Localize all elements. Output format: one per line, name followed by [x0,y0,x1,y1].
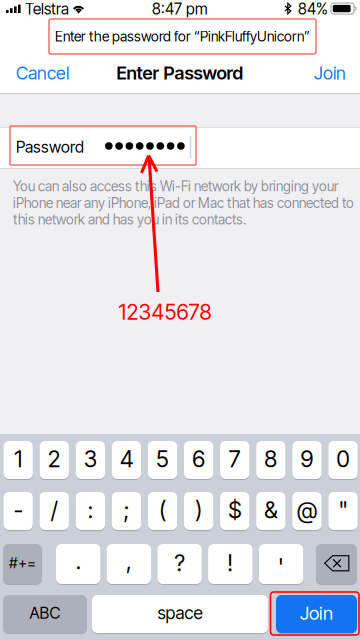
staticText: " [339,496,348,524]
staticText: ( [159,496,166,524]
staticText: 3 [84,445,97,473]
staticText: 8 [264,445,277,473]
button[interactable]: $ [220,491,249,531]
staticText: 5 [156,445,169,473]
staticText: $ [228,496,241,524]
button[interactable]: & [256,491,285,531]
staticText: Join [314,62,346,84]
staticText: 0 [337,445,350,473]
staticText: ' [278,553,284,581]
staticText: 2 [48,445,61,473]
button[interactable]: 6 [184,440,213,480]
staticText: 8:47 pm [152,0,208,18]
staticText: , [126,547,132,575]
button[interactable]: 7 [220,440,249,480]
button[interactable]: @ [292,491,322,531]
button[interactable]: space [92,594,268,634]
staticText: ? [175,549,185,577]
staticText: Password [16,137,84,157]
button[interactable]: Password [0,128,360,168]
staticText: ! [227,549,233,577]
staticText: Enter the password for “PinkFluffyUnicor… [55,28,310,45]
staticText: @ [297,496,317,524]
staticText: #+= [9,554,36,572]
staticText: space [157,602,202,623]
button[interactable]: 8 [256,440,285,480]
staticText: 4 [120,445,133,473]
button[interactable]: Join [300,62,346,84]
button[interactable]: 0 [328,440,358,480]
button[interactable]: : [76,491,105,531]
button[interactable]: . [56,543,100,585]
button[interactable]: 2 [40,440,69,480]
button[interactable]: 9 [292,440,322,480]
staticText: - [14,496,23,524]
button[interactable]: ; [112,491,141,531]
button[interactable]: ) [184,491,213,531]
staticText: 9 [300,445,313,473]
staticText: 1 [14,445,22,473]
button[interactable]: - [3,491,33,531]
staticText: & [264,496,277,524]
staticText: ; [123,496,129,524]
button[interactable]: / [40,491,69,531]
staticText: 84% [298,0,328,18]
button[interactable]: 1 [3,440,33,480]
button[interactable]: ABC [3,594,87,634]
button[interactable]: ? [157,543,202,585]
button[interactable]: ! [208,543,252,585]
button[interactable]: Delete [316,543,357,585]
staticText: Cancel [16,62,69,84]
staticText: 7 [229,445,241,473]
staticText: Join [300,602,333,624]
button[interactable]: 5 [148,440,177,480]
button[interactable]: " [328,491,358,531]
staticText: 6 [192,445,205,473]
button[interactable]: , [107,543,151,585]
staticText: . [76,547,81,575]
staticText: : [88,496,93,524]
staticText: 12345678 [118,299,211,325]
button[interactable]: 3 [76,440,105,480]
button[interactable]: #+= [3,543,42,585]
staticText: ) [195,496,202,524]
staticText: / [51,496,58,524]
button[interactable]: Join [276,594,357,634]
button[interactable]: ( [148,491,177,531]
staticText: ABC [29,603,60,623]
staticText: Enter Password [116,62,243,84]
staticText: Telstra [25,0,69,18]
button[interactable]: 4 [112,440,141,480]
staticText: You can also access this Wi-Fi network b… [13,178,354,228]
button[interactable]: Cancel [16,62,78,84]
button[interactable]: ' [259,543,303,585]
